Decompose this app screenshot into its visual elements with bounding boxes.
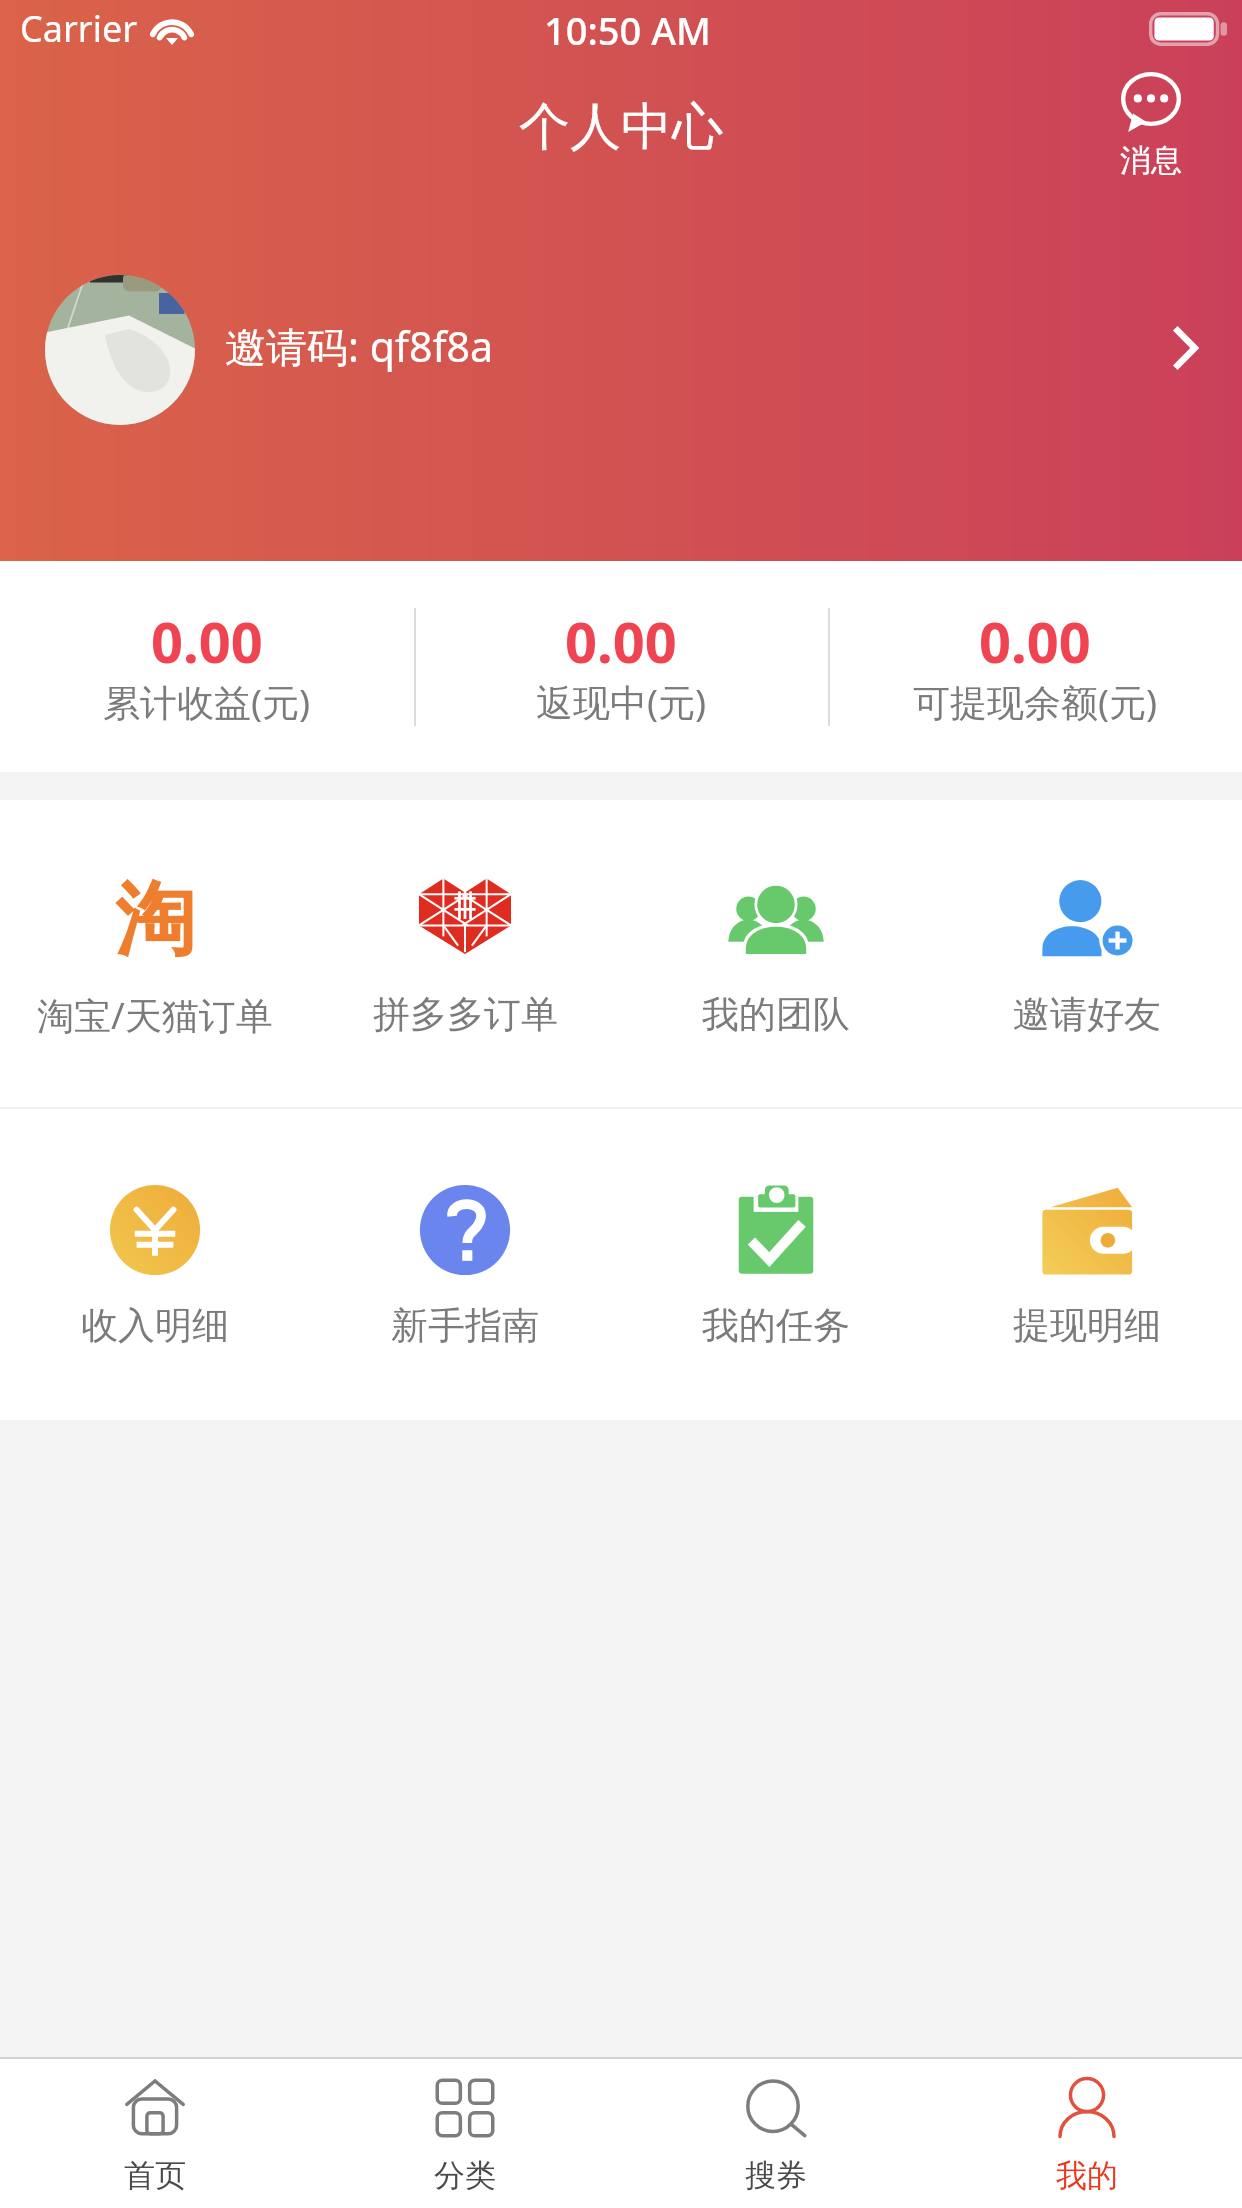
staticText: Carrier — [20, 4, 138, 53]
button[interactable]: 邀请好友 — [931, 800, 1242, 1107]
button[interactable]: 邀请码: qf8f8a — [0, 258, 1242, 442]
staticText: 首页 — [124, 2156, 186, 2195]
button[interactable]: 拼多多订单 — [310, 800, 620, 1107]
button[interactable]: 0.00 — [414, 561, 828, 772]
staticText: 新手指南 — [391, 1302, 539, 1349]
staticText: 0.00 — [151, 603, 263, 679]
staticText: 可提现余额(元) — [913, 676, 1158, 727]
staticText: 消息 — [1120, 141, 1182, 180]
staticText: 淘宝/天猫订单 — [37, 989, 273, 1040]
staticText: 0.00 — [979, 603, 1091, 679]
staticText: 我的 — [1056, 2156, 1118, 2195]
staticText: 10:50 AM — [544, 4, 711, 56]
staticText: 邀请好友 — [1013, 991, 1161, 1038]
button[interactable]: 搜券 — [620, 2059, 931, 2208]
button[interactable]: 提现明细 — [931, 1109, 1242, 1420]
staticText: 累计收益(元) — [103, 676, 311, 727]
button[interactable]: 分类 — [310, 2059, 620, 2208]
button[interactable]: 收入明细 — [0, 1109, 310, 1420]
staticText: 我的团队 — [702, 991, 850, 1038]
button[interactable]: 首页 — [0, 2059, 310, 2208]
button[interactable]: 消息 — [1105, 64, 1197, 184]
button[interactable]: 我的团队 — [620, 800, 931, 1107]
staticText: 返现中(元) — [536, 676, 707, 727]
staticText: 0.00 — [565, 603, 677, 679]
button[interactable]: 淘 — [0, 800, 310, 1107]
staticText: 我的任务 — [702, 1302, 850, 1349]
staticText: 分类 — [434, 2156, 496, 2195]
button[interactable]: 我的 — [931, 2059, 1242, 2208]
button[interactable]: 0.00 — [0, 561, 414, 772]
button[interactable]: 新手指南 — [310, 1109, 620, 1420]
staticText: 邀请码: qf8f8a — [225, 318, 493, 374]
staticText: 拼多多订单 — [373, 991, 558, 1038]
staticText: 个人中心 — [519, 95, 723, 159]
button[interactable]: 0.00 — [828, 561, 1242, 772]
staticText: 收入明细 — [81, 1302, 229, 1349]
staticText: 淘 — [115, 870, 195, 962]
staticText: 提现明细 — [1013, 1302, 1161, 1349]
staticText: 搜券 — [745, 2156, 807, 2195]
button[interactable]: 我的任务 — [620, 1109, 931, 1420]
